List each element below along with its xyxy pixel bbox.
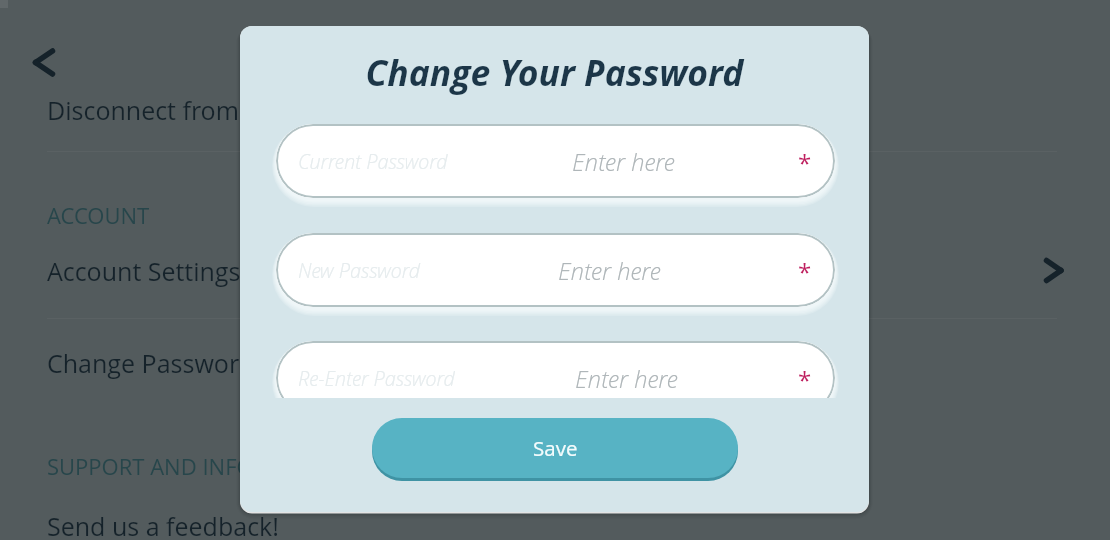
button[interactable]: Back: [23, 44, 63, 84]
staticText: Change Password: [47, 346, 254, 380]
staticText: Current Password: [298, 148, 448, 175]
staticText: Enter here: [558, 254, 661, 287]
button[interactable]: Save: [372, 418, 738, 478]
staticText: Change Your Password: [240, 48, 869, 96]
staticText: *: [798, 146, 812, 179]
staticText: SUPPORT AND INFO: [47, 451, 254, 481]
button[interactable]: New Password: [276, 233, 835, 307]
button[interactable]: Re-Enter Password: [276, 341, 835, 398]
staticText: ACCOUNT: [47, 200, 150, 230]
button[interactable]: Current Password: [276, 124, 835, 198]
staticText: Account Settings: [47, 254, 241, 288]
button[interactable]: Change Password: [0, 338, 1110, 388]
button[interactable]: Account Settings: [0, 246, 1110, 296]
staticText: Save: [533, 434, 578, 462]
staticText: Disconnect from Device: [47, 93, 322, 127]
staticText: Send us a feedback!: [47, 509, 279, 540]
staticText: *: [798, 363, 812, 396]
button[interactable]: Send us a feedback!: [0, 501, 1110, 540]
staticText: Enter here: [575, 362, 678, 395]
staticText: Enter here: [572, 145, 675, 178]
staticText: *: [798, 255, 812, 288]
other: Open: [1037, 256, 1067, 286]
staticText: New Password: [298, 257, 420, 284]
staticText: Re-Enter Password: [298, 365, 455, 392]
button[interactable]: Disconnect from Device: [0, 85, 1110, 135]
